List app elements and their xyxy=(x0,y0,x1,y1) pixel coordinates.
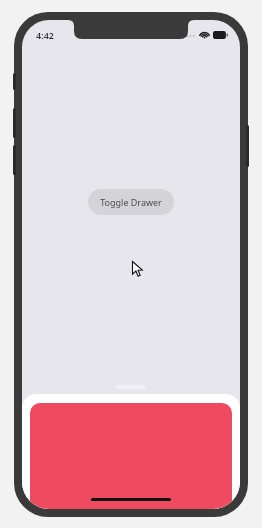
button[interactable]: Toggle Drawer xyxy=(88,189,174,215)
button[interactable] xyxy=(30,403,232,509)
staticText: 4:42 xyxy=(36,29,54,41)
staticText: Toggle Drawer xyxy=(100,196,162,208)
